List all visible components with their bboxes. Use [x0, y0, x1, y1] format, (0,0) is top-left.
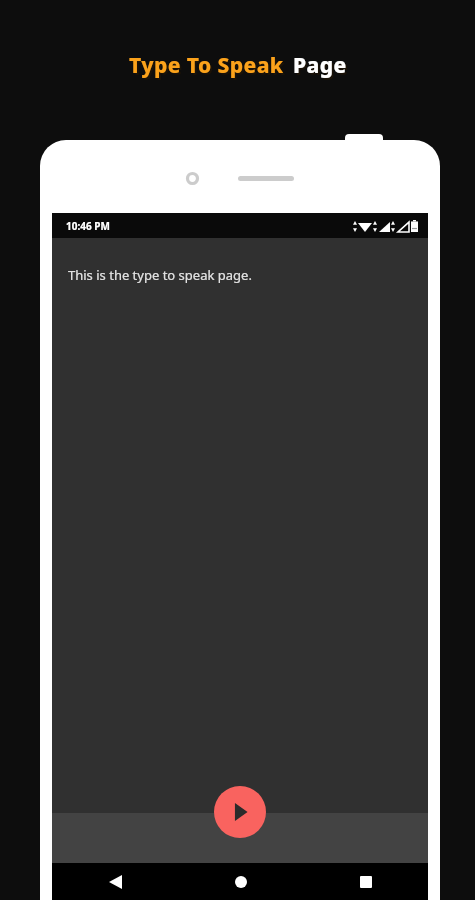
staticText: Page — [293, 51, 347, 80]
button[interactable]: Home — [178, 863, 303, 900]
button[interactable]: Play speech — [214, 786, 266, 838]
staticText: Type To Speak — [131, 53, 286, 82]
button[interactable]: Back — [52, 863, 178, 900]
staticText: This is the type to speak page. — [68, 266, 252, 284]
button[interactable]: Recent apps — [303, 863, 428, 900]
staticText: Type To Speak — [129, 51, 284, 80]
staticText: 10:46 PM — [66, 219, 110, 233]
staticText: Page — [295, 53, 349, 82]
